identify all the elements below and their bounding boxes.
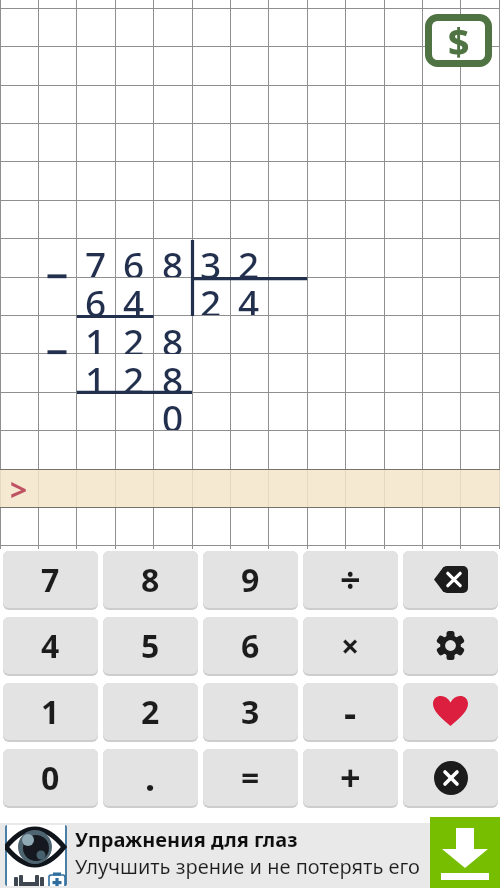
staticText: 2 <box>200 277 222 315</box>
staticText: 6 <box>241 624 260 668</box>
staticText: ÷ <box>340 555 361 604</box>
button[interactable]: 3 <box>203 683 298 740</box>
staticText: 6 <box>85 277 107 315</box>
button[interactable] <box>430 817 500 888</box>
button[interactable] <box>403 617 498 674</box>
button[interactable]: 6 <box>203 617 298 674</box>
staticText: 5 <box>141 624 160 668</box>
button[interactable]: 5 <box>103 617 198 674</box>
button[interactable]: 1 <box>3 683 98 740</box>
staticText: 1 <box>41 690 60 734</box>
button[interactable]: ÷ <box>303 551 398 608</box>
button[interactable]: 2 <box>103 683 198 740</box>
staticText: 0 <box>162 392 184 430</box>
staticText: + <box>340 753 361 802</box>
staticText: > <box>10 469 28 507</box>
button[interactable]: - <box>303 683 398 740</box>
button[interactable]: $ <box>425 14 492 67</box>
staticText: 8 <box>162 239 184 277</box>
button[interactable] <box>0 823 500 888</box>
button[interactable] <box>403 551 498 608</box>
staticText: $ <box>448 16 470 66</box>
staticText: 1 <box>85 316 107 354</box>
staticText: 8 <box>141 558 160 602</box>
button[interactable]: × <box>303 617 398 674</box>
button[interactable]: + <box>303 749 398 806</box>
staticText: 9 <box>241 558 260 602</box>
staticText: 1 <box>85 354 107 392</box>
button[interactable]: 9 <box>203 551 298 608</box>
staticText: 7 <box>85 239 107 277</box>
staticText: 2 <box>238 239 260 277</box>
staticText: 4 <box>238 277 260 315</box>
staticText: . <box>145 753 156 802</box>
button[interactable]: 4 <box>3 617 98 674</box>
staticText: = <box>241 756 260 800</box>
staticText: Упражнения для глаз <box>75 826 298 853</box>
staticText: 4 <box>123 277 145 315</box>
staticText: 6 <box>123 239 145 277</box>
staticText: × <box>341 624 360 668</box>
staticText: 8 <box>162 316 184 354</box>
button[interactable] <box>403 749 498 806</box>
button[interactable]: 0 <box>3 749 98 806</box>
button[interactable]: = <box>203 749 298 806</box>
button[interactable] <box>403 683 498 740</box>
staticText: 2 <box>123 354 145 392</box>
staticText: 0 <box>41 756 60 800</box>
button[interactable]: 7 <box>3 551 98 608</box>
staticText: 3 <box>241 690 260 734</box>
staticText: 4 <box>41 624 60 668</box>
button[interactable]: 8 <box>103 551 198 608</box>
staticText: 7 <box>41 558 60 602</box>
staticText: 2 <box>141 690 160 734</box>
staticText: 2 <box>123 316 145 354</box>
staticText: Улучшить зрение и не потерять его <box>75 853 420 880</box>
staticText: 8 <box>162 354 184 392</box>
staticText: 3 <box>200 239 222 277</box>
button[interactable]: . <box>103 749 198 806</box>
staticText: - <box>344 686 357 738</box>
